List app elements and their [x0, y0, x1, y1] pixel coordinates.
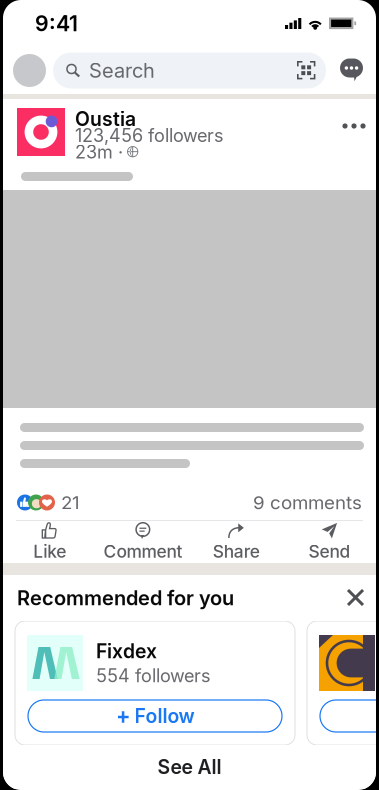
button[interactable]: 9 comments: [253, 485, 376, 520]
staticText: Share: [213, 541, 260, 562]
button[interactable]: Comment: [96, 521, 189, 563]
staticText: 9:41: [35, 11, 78, 36]
staticText: 23m ·: [75, 141, 123, 163]
staticText: 123,456 followers: [75, 125, 224, 146]
staticText: Comment: [103, 541, 182, 562]
staticText: Search: [89, 58, 155, 83]
staticText: +: [115, 702, 130, 730]
button[interactable]: 21: [3, 485, 80, 520]
staticText: 21: [61, 491, 80, 514]
staticText: Oustia: [75, 107, 136, 131]
staticText: Like: [33, 541, 66, 562]
button[interactable]: Like: [3, 521, 96, 563]
button[interactable]: Share: [189, 521, 283, 563]
staticText: Send: [308, 541, 350, 562]
button[interactable]: See All: [3, 745, 376, 789]
staticText: Recommended for you: [17, 586, 234, 610]
button[interactable]: Send: [283, 521, 376, 563]
button[interactable]: +: [320, 700, 379, 732]
button[interactable]: Your profile: [3, 54, 53, 87]
button[interactable]: +: [28, 700, 282, 732]
staticText: Follow: [134, 704, 194, 728]
staticText: See All: [157, 755, 221, 779]
button[interactable]: More options: [332, 108, 376, 144]
staticText: 9 comments: [253, 491, 362, 514]
button[interactable]: Dismiss recommendations: [336, 580, 376, 616]
staticText: Fixdex: [96, 639, 157, 663]
staticText: 554 followers: [96, 665, 211, 687]
button[interactable]: Oustia: [3, 108, 75, 156]
button[interactable]: Messenger: [326, 58, 376, 82]
button[interactable]: Search: [53, 52, 326, 88]
